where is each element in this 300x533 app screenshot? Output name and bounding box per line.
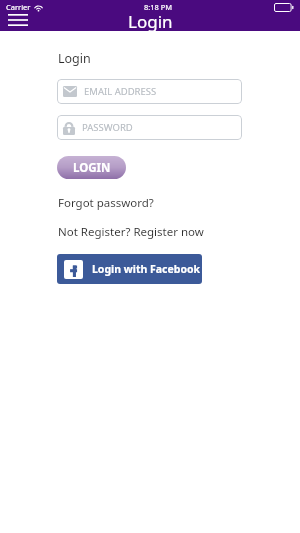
staticText: Carrier (6, 2, 31, 12)
button[interactable]: PASSWORD (57, 115, 242, 140)
button[interactable]: LOGIN (57, 156, 126, 179)
staticText: Login with Facebook (92, 262, 201, 276)
staticText: 8:18 PM (144, 2, 173, 12)
staticText: EMAIL ADDRESS (84, 85, 157, 98)
button[interactable]: Login with Facebook (57, 254, 202, 284)
button[interactable]: Menu (6, 12, 30, 28)
button[interactable]: EMAIL ADDRESS (57, 79, 242, 104)
staticText: LOGIN (73, 160, 111, 176)
staticText: Login (58, 50, 91, 67)
staticText: PASSWORD (82, 121, 133, 134)
staticText: Login (128, 10, 173, 33)
button[interactable]: Not Register? Register now (58, 224, 204, 240)
button[interactable]: Forgot password? (58, 195, 154, 211)
